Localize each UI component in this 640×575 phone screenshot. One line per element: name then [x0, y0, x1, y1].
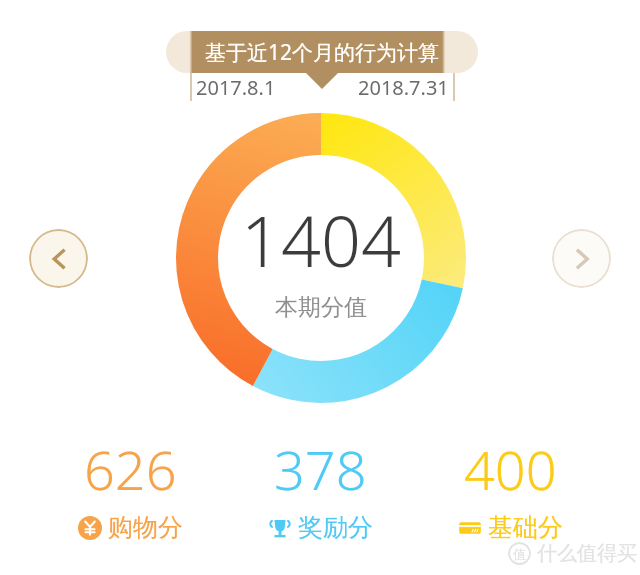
- staticText: 值: [513, 546, 526, 562]
- staticText: 1404: [241, 192, 401, 287]
- button[interactable]: Next period: [552, 229, 611, 288]
- staticText: 626: [84, 432, 177, 506]
- staticText: 基于近12个月的行为计算: [205, 38, 440, 67]
- staticText: 400: [464, 432, 557, 506]
- staticText: 奖励分: [298, 512, 373, 543]
- button[interactable]: 400: [390, 432, 630, 537]
- staticText: 本期分值: [275, 293, 367, 322]
- staticText: 2018.7.31: [358, 74, 449, 101]
- button[interactable]: 626: [10, 432, 250, 537]
- staticText: 什么值得买: [537, 541, 637, 566]
- staticText: 购物分: [108, 512, 183, 543]
- staticText: 2017.8.1: [196, 74, 276, 101]
- button[interactable]: Previous period: [29, 229, 88, 288]
- staticText: 378: [274, 432, 367, 506]
- button[interactable]: 378: [200, 432, 440, 537]
- staticText: 基础分: [488, 512, 563, 543]
